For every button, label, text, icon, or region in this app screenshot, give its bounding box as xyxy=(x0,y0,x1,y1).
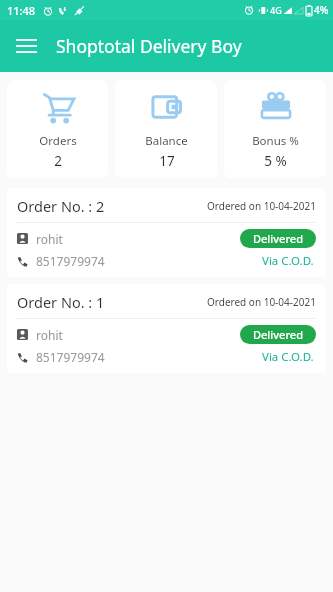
button[interactable]: Orders xyxy=(7,80,108,178)
staticText: Shoptotal Delivery Boy xyxy=(56,34,242,58)
button[interactable]: Bonus % xyxy=(224,80,326,178)
staticText: rohit xyxy=(36,231,63,247)
staticText: rohit xyxy=(36,327,63,343)
staticText: Delivered xyxy=(253,327,303,342)
staticText: 5 % xyxy=(264,152,287,170)
staticText: Bonus % xyxy=(252,133,299,149)
staticText: 8517979974 xyxy=(36,253,105,269)
button[interactable]: Delivered xyxy=(240,229,316,248)
staticText: 17 xyxy=(159,152,175,170)
staticText: Orders xyxy=(39,133,77,149)
button[interactable]: Order No. : 2 xyxy=(7,188,326,277)
staticText: 11:48 xyxy=(7,3,36,18)
button[interactable]: Order No. : 1 xyxy=(7,284,326,373)
staticText: 4% xyxy=(314,3,329,17)
staticText: Order No. : 1 xyxy=(17,292,105,312)
staticText: Ordered on 10-04-2021 xyxy=(207,199,316,213)
staticText: 8517979974 xyxy=(36,349,105,365)
staticText: Via C.O.D. xyxy=(262,253,314,269)
button[interactable]: Balance xyxy=(115,80,217,178)
staticText: Order No. : 2 xyxy=(17,196,105,216)
button[interactable]: Open navigation menu xyxy=(9,29,43,63)
staticText: 2 xyxy=(54,152,62,170)
staticText: Delivered xyxy=(253,231,303,246)
staticText: 4G xyxy=(270,4,282,16)
button[interactable]: Delivered xyxy=(240,325,316,344)
staticText: Via C.O.D. xyxy=(262,349,314,365)
staticText: Balance xyxy=(145,133,188,149)
staticText: Ordered on 10-04-2021 xyxy=(207,295,316,309)
